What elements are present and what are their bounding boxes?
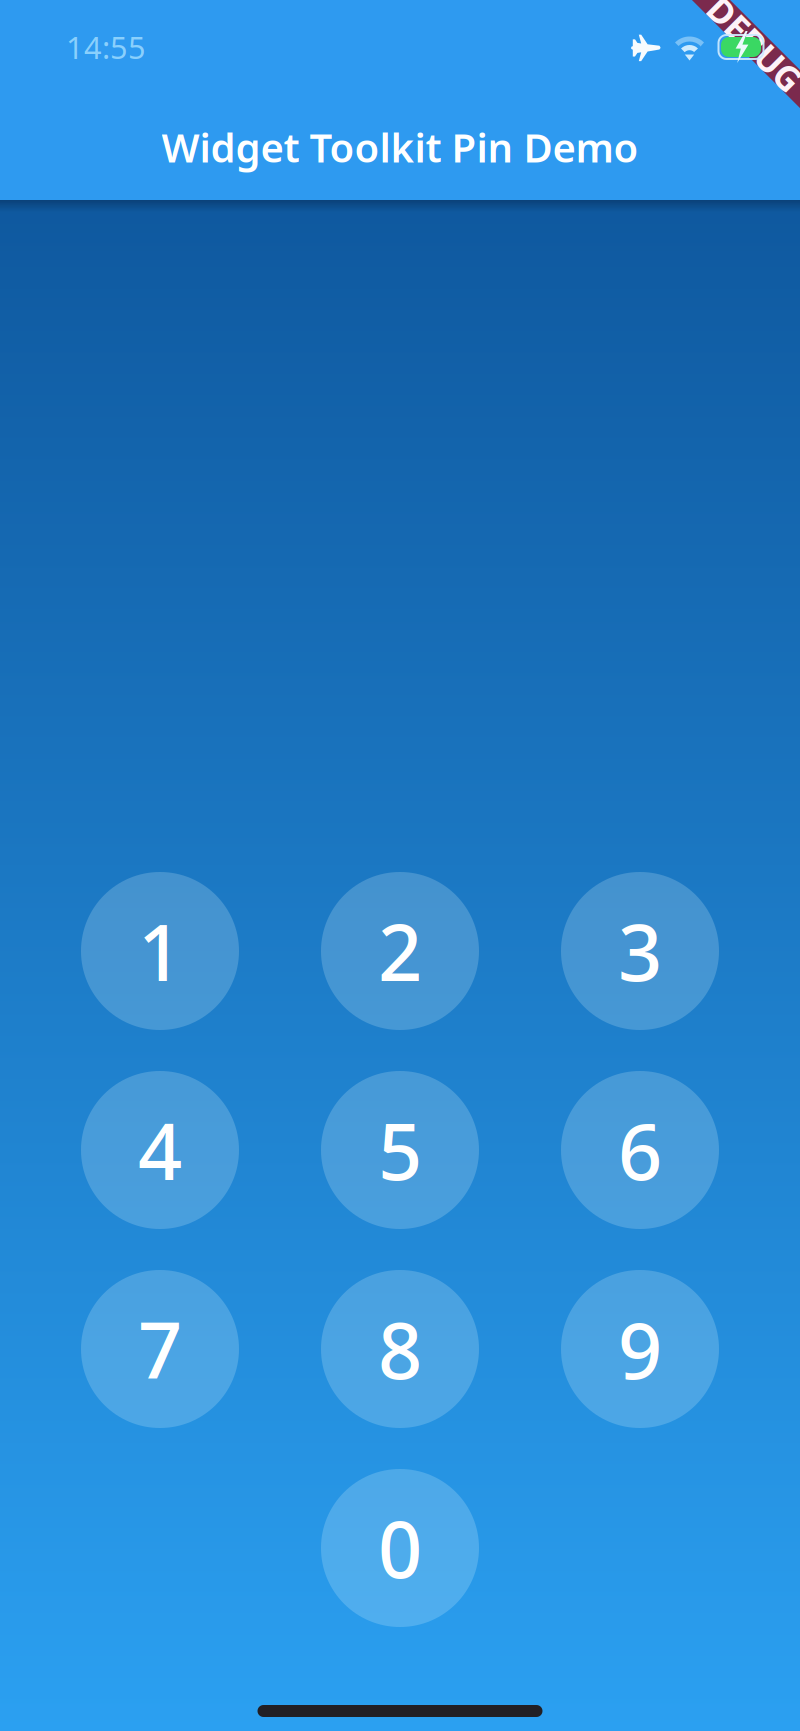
staticText: DEBUG — [696, 21, 800, 67]
staticText: 5 — [378, 1099, 422, 1201]
staticText: 4 — [138, 1099, 182, 1201]
staticText: 9 — [618, 1298, 662, 1400]
button[interactable]: 2 — [321, 872, 479, 1030]
button[interactable]: 7 — [81, 1270, 239, 1428]
button[interactable]: 1 — [81, 872, 239, 1030]
staticText: 6 — [618, 1099, 662, 1201]
staticText: 1 — [138, 900, 182, 1002]
button[interactable]: 5 — [321, 1071, 479, 1229]
button[interactable]: 8 — [321, 1270, 479, 1428]
staticText: 8 — [378, 1298, 422, 1400]
button[interactable]: 4 — [81, 1071, 239, 1229]
button[interactable]: 0 — [321, 1469, 479, 1627]
staticText: 7 — [138, 1298, 182, 1400]
staticText: Widget Toolkit Pin Demo — [161, 120, 638, 173]
staticText: 0 — [378, 1497, 422, 1599]
button[interactable]: 9 — [561, 1270, 719, 1428]
staticText: 3 — [618, 900, 662, 1002]
button[interactable]: 3 — [561, 872, 719, 1030]
staticText: 2 — [378, 900, 422, 1002]
button[interactable]: 6 — [561, 1071, 719, 1229]
staticText: 14:55 — [66, 27, 146, 67]
